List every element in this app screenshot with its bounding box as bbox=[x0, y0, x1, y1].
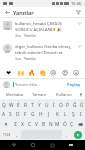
button[interactable]: Back bbox=[9, 140, 19, 150]
button[interactable]: Merhaba bbox=[2, 90, 26, 99]
button[interactable]: S bbox=[7, 109, 14, 119]
button[interactable]: , bbox=[13, 130, 20, 139]
button[interactable]: Back bbox=[3, 8, 11, 16]
button[interactable]: Z bbox=[11, 119, 19, 129]
button[interactable]: L bbox=[61, 109, 69, 119]
button[interactable]: D bbox=[14, 109, 21, 119]
button[interactable]: A bbox=[0, 109, 7, 119]
staticText: Yanıtlar bbox=[13, 9, 34, 16]
button[interactable]: K bbox=[53, 109, 61, 119]
staticText: 🔥 bbox=[28, 69, 36, 76]
button[interactable]: 1 bbox=[0, 99, 8, 109]
staticText: F bbox=[24, 111, 27, 118]
button[interactable]: Emoji 🔥 bbox=[27, 68, 36, 77]
button[interactable]: Yanıtla bbox=[24, 56, 36, 61]
staticText: Y bbox=[38, 102, 41, 109]
button[interactable]: 1 bbox=[29, 99, 36, 109]
button[interactable]: Emoji ❤️ bbox=[4, 68, 13, 77]
button[interactable]: Shift bbox=[0, 119, 11, 129]
staticText: C bbox=[28, 121, 32, 128]
staticText: 1 bbox=[60, 99, 62, 102]
staticText: ?123 bbox=[3, 132, 11, 137]
button[interactable]: Like bbox=[77, 44, 82, 49]
button[interactable]: Voice input bbox=[76, 90, 85, 99]
button[interactable]: 1 bbox=[8, 99, 15, 109]
staticText: M bbox=[55, 121, 60, 128]
button[interactable]: 1 bbox=[71, 99, 78, 109]
button[interactable]: 1 bbox=[22, 99, 29, 109]
button[interactable]: Backspace bbox=[75, 119, 85, 129]
button[interactable]: Emoji 😍 bbox=[61, 68, 70, 77]
staticText: 1 bbox=[46, 99, 48, 102]
staticText: A bbox=[2, 111, 6, 118]
button[interactable]: J bbox=[45, 109, 53, 119]
staticText: V bbox=[35, 121, 38, 128]
button[interactable]: Profile picture bbox=[3, 44, 12, 53]
staticText: Q bbox=[2, 102, 6, 109]
button[interactable]: . bbox=[63, 130, 70, 139]
button[interactable]: M bbox=[54, 119, 61, 129]
button[interactable]: Tamam bbox=[26, 90, 51, 99]
button[interactable]: Kullanıcı bbox=[51, 90, 76, 99]
button[interactable]: Like bbox=[77, 21, 82, 26]
button[interactable]: 1 bbox=[15, 99, 22, 109]
staticText: 1 bbox=[32, 99, 34, 102]
staticText: Ç bbox=[70, 121, 74, 128]
button[interactable]: Profile picture bbox=[3, 21, 12, 30]
staticText: T bbox=[31, 102, 34, 109]
button[interactable]: Emoji 😮 bbox=[72, 68, 81, 77]
button[interactable]: 1 bbox=[57, 99, 64, 109]
button[interactable]: 1 bbox=[78, 99, 85, 109]
staticText: Kullanıcı bbox=[56, 92, 72, 97]
staticText: 🙌 bbox=[17, 69, 25, 76]
staticText: 😮 bbox=[73, 69, 80, 76]
staticText: B bbox=[42, 121, 46, 128]
button[interactable]: G bbox=[29, 109, 37, 119]
button[interactable]: 1 bbox=[36, 99, 43, 109]
button[interactable]: ?123 bbox=[0, 130, 13, 139]
staticText: 1 bbox=[53, 99, 55, 102]
button[interactable]: Yanıtla bbox=[24, 33, 36, 38]
button[interactable]: 1 bbox=[64, 99, 71, 109]
button[interactable]: Filter bbox=[74, 8, 82, 16]
staticText: 1 bbox=[3, 99, 5, 102]
staticText: U bbox=[45, 102, 49, 109]
staticText: Yorum ekle... bbox=[15, 82, 41, 88]
button[interactable]: H bbox=[37, 109, 45, 119]
staticText: L bbox=[64, 111, 67, 118]
button[interactable]: Recents bbox=[47, 140, 57, 150]
button[interactable]: Emoji 🙌 bbox=[16, 68, 25, 77]
button[interactable]: Yorum ekle... bbox=[15, 82, 66, 88]
button[interactable]: X bbox=[19, 119, 26, 129]
button[interactable]: Keyboard bbox=[66, 140, 76, 150]
button[interactable]: I bbox=[77, 109, 85, 119]
staticText: 1 bbox=[67, 99, 69, 102]
staticText: 1 bbox=[74, 99, 76, 102]
staticText: Paylaş bbox=[67, 82, 81, 88]
button[interactable]: 1 bbox=[43, 99, 50, 109]
staticText: 😢 bbox=[50, 69, 57, 76]
button[interactable]: F bbox=[21, 109, 29, 119]
button[interactable]: Emoji 👏 bbox=[38, 68, 47, 77]
staticText: I bbox=[53, 102, 55, 109]
button[interactable]: C bbox=[26, 119, 33, 129]
button[interactable]: V bbox=[33, 119, 40, 129]
staticText: 3sa bbox=[15, 56, 21, 61]
staticText: 15:06 bbox=[71, 1, 82, 6]
button[interactable]: Ş bbox=[69, 109, 77, 119]
button[interactable]: 1 bbox=[50, 99, 57, 109]
staticText: 1 bbox=[11, 99, 13, 102]
button[interactable]: Paylaş bbox=[66, 82, 82, 88]
staticText: J bbox=[48, 111, 50, 118]
button[interactable]: Send bbox=[70, 130, 85, 139]
staticText: D bbox=[16, 111, 20, 118]
button[interactable]: B bbox=[40, 119, 47, 129]
staticText: Ö bbox=[63, 121, 67, 128]
button[interactable]: Ç bbox=[68, 119, 75, 129]
button[interactable]: Emoji 😢 bbox=[49, 68, 58, 77]
button[interactable]: Ö bbox=[61, 119, 68, 129]
button[interactable]: Home bbox=[28, 140, 38, 150]
button[interactable]: N bbox=[47, 119, 54, 129]
staticText: P bbox=[66, 102, 69, 109]
